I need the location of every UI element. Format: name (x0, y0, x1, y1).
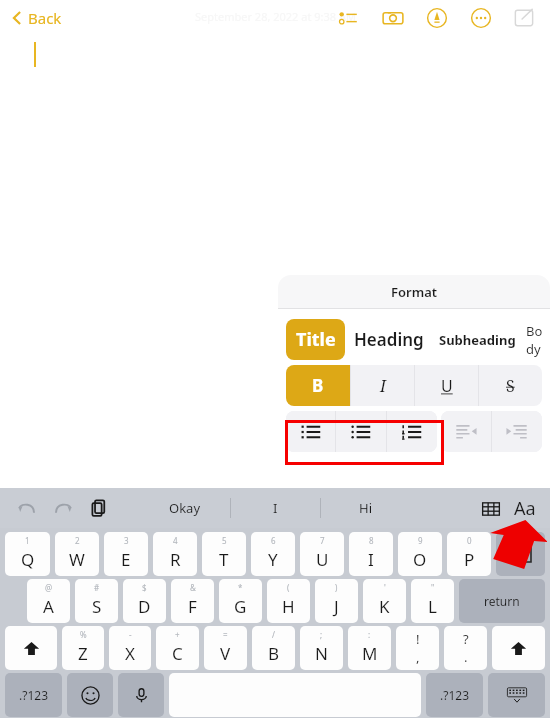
button[interactable]: ' (363, 579, 406, 623)
staticText: J (334, 595, 339, 618)
staticText: A (43, 595, 54, 618)
button[interactable]: Heading (345, 319, 433, 360)
button[interactable]: Emoji (67, 673, 113, 717)
staticText: Format (391, 283, 438, 301)
button[interactable]: Shift (5, 626, 57, 670)
button[interactable]: / (252, 626, 295, 670)
staticText: ; (320, 629, 323, 640)
button[interactable]: ! (396, 626, 439, 670)
button[interactable]: I (351, 365, 414, 406)
staticText: % (80, 629, 87, 640)
button[interactable]: : (348, 626, 391, 670)
button[interactable]: Shift (492, 626, 545, 670)
staticText: 7 (320, 535, 325, 546)
button[interactable]: Dictation (118, 673, 164, 717)
button[interactable]: Markup (424, 5, 450, 31)
button[interactable]: * (219, 579, 262, 623)
staticText: ( (287, 582, 290, 593)
button[interactable]: 3 (104, 532, 148, 576)
staticText: 8 (369, 535, 374, 546)
staticText: " (431, 582, 435, 593)
button[interactable]: 2 (55, 532, 99, 576)
button[interactable]: 1 (5, 532, 50, 576)
button[interactable]: 8 (349, 532, 393, 576)
button[interactable]: U (415, 365, 478, 406)
staticText: Title (296, 327, 336, 352)
staticText: S (92, 595, 102, 618)
button[interactable]: % (62, 626, 104, 670)
staticText: 1 (25, 535, 30, 546)
button[interactable]: ; (300, 626, 343, 670)
button[interactable]: Table (480, 498, 502, 520)
button[interactable]: & (171, 579, 214, 623)
staticText: E (121, 548, 131, 571)
staticText: Q (21, 548, 35, 571)
staticText: : (368, 629, 371, 640)
staticText: Heading (354, 328, 424, 351)
staticText: O (413, 548, 427, 571)
staticText: M (362, 642, 378, 665)
button[interactable]: Delete (496, 532, 545, 576)
button[interactable]: Paste (88, 497, 110, 519)
button[interactable]: 6 (251, 532, 295, 576)
button[interactable]: " (411, 579, 454, 623)
staticText: ? (463, 630, 469, 648)
staticText: & (190, 582, 196, 593)
button[interactable]: I (231, 491, 320, 525)
button[interactable]: S (479, 365, 542, 406)
button[interactable]: Title (286, 319, 345, 360)
button[interactable]: Compose (512, 6, 536, 30)
staticText: 2 (75, 535, 80, 546)
button[interactable]: = (204, 626, 247, 670)
button[interactable]: 4 (153, 532, 197, 576)
button[interactable]: Undo (16, 497, 38, 519)
button[interactable]: 7 (300, 532, 344, 576)
button[interactable]: List style (286, 411, 335, 452)
button[interactable]: $ (123, 579, 166, 623)
button[interactable]: Hide keyboard (488, 673, 545, 717)
staticText: 6 (271, 535, 276, 546)
staticText: C (172, 642, 183, 665)
staticText: 3 (124, 535, 129, 546)
button[interactable]: Camera (380, 5, 406, 31)
button[interactable]: 9 (398, 532, 442, 576)
staticText: 4 (173, 535, 178, 546)
button[interactable]: @ (27, 579, 70, 623)
staticText: B (312, 374, 324, 397)
button[interactable]: Redo (52, 497, 74, 519)
button[interactable]: List style (441, 411, 491, 452)
staticText: L (428, 595, 437, 618)
staticText: = (223, 629, 228, 640)
button[interactable]: More (468, 5, 494, 31)
staticText: 0 (467, 535, 472, 546)
button[interactable]: ( (267, 579, 310, 623)
button[interactable]: Aa (514, 496, 536, 521)
button[interactable]: B (286, 365, 350, 406)
button[interactable]: Body (522, 319, 550, 360)
button[interactable]: 0 (447, 532, 491, 576)
staticText: X (125, 642, 135, 665)
button[interactable]: return (459, 579, 545, 623)
button[interactable]: List style (336, 411, 386, 452)
staticText: return (484, 593, 520, 609)
staticText: W (69, 548, 85, 571)
staticText: 5 (222, 535, 227, 546)
button[interactable]: List style (387, 411, 437, 452)
button[interactable]: Back (10, 8, 62, 28)
button[interactable]: ) (315, 579, 358, 623)
staticText: Okay (169, 499, 201, 517)
button[interactable]: Okay (140, 491, 230, 525)
button[interactable]: + (156, 626, 199, 670)
button[interactable]: .?123 (426, 673, 483, 717)
button[interactable]: Checklist (336, 5, 362, 31)
button[interactable]: # (75, 579, 118, 623)
button[interactable]: .?123 (5, 673, 62, 717)
button[interactable]: - (109, 626, 151, 670)
button[interactable]: ? (444, 626, 487, 670)
button[interactable]: 5 (202, 532, 246, 576)
button[interactable]: List style (492, 411, 542, 452)
button[interactable]: Hi (321, 491, 410, 525)
staticText: H (282, 595, 295, 618)
button[interactable]: Subheading (433, 319, 522, 360)
